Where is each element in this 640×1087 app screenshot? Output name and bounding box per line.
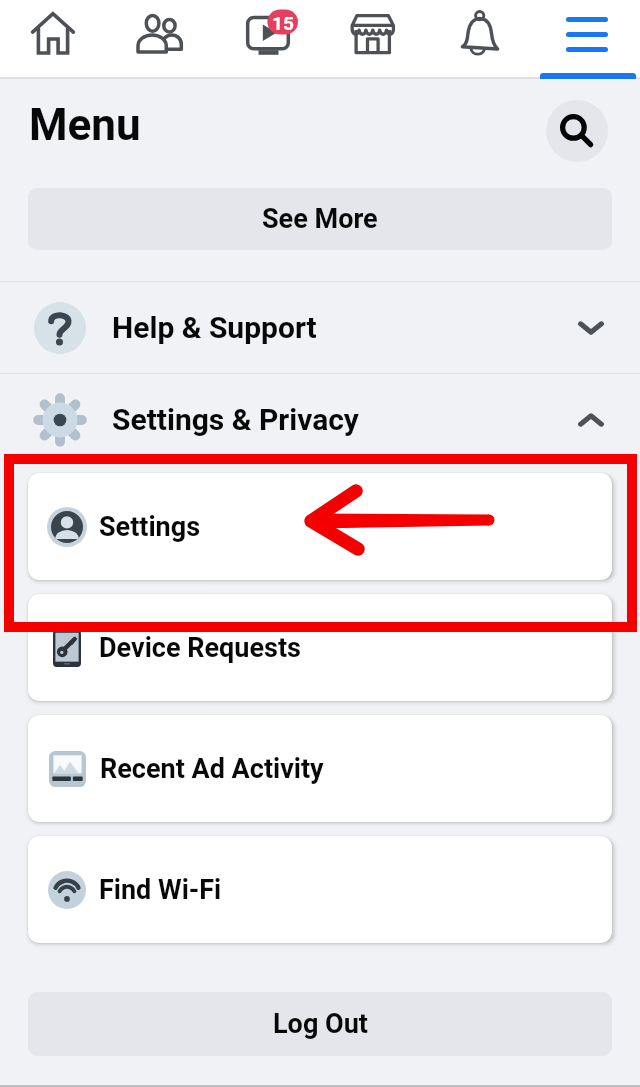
staticText: Settings [99, 511, 201, 543]
button[interactable]: Recent Ad Activity [28, 715, 612, 822]
button[interactable]: Find Wi-Fi [28, 836, 612, 943]
button[interactable]: Device Requests [28, 594, 612, 701]
button[interactable]: See More [28, 188, 612, 250]
staticText: Help & Support [112, 310, 317, 345]
button[interactable]: Search [546, 100, 608, 162]
staticText: Menu [29, 99, 141, 151]
button[interactable]: Video [214, 0, 320, 77]
button[interactable]: Home [0, 0, 106, 77]
staticText: Device Requests [99, 632, 301, 664]
button[interactable]: Help & Support [0, 282, 640, 373]
button[interactable]: Friends [107, 0, 213, 77]
button[interactable]: Notifications [427, 0, 533, 77]
staticText: Log Out [273, 1008, 368, 1040]
staticText: Recent Ad Activity [100, 753, 324, 785]
staticText: Find Wi-Fi [99, 874, 222, 906]
button[interactable]: Log Out [28, 992, 612, 1056]
staticText: Settings & Privacy [112, 402, 359, 437]
button[interactable]: Settings [28, 473, 612, 580]
button[interactable]: Menu [534, 0, 640, 77]
button[interactable]: Marketplace [320, 0, 426, 77]
staticText: See More [262, 203, 378, 235]
staticText: 15 [272, 12, 294, 34]
button[interactable]: Settings & Privacy [0, 374, 640, 465]
